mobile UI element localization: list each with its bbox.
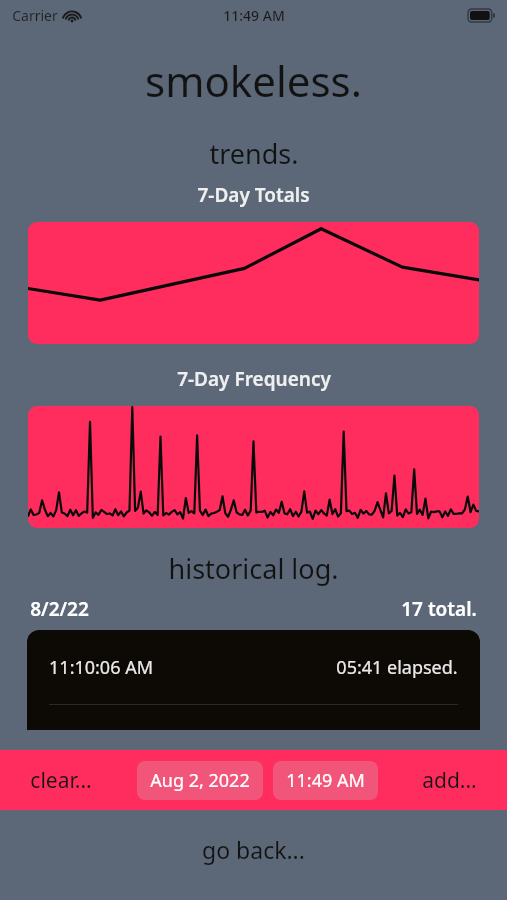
- staticText: 11:49 AM: [286, 768, 365, 793]
- staticText: historical log.: [168, 550, 339, 587]
- staticText: 11:10:06 AM: [49, 655, 153, 680]
- staticText: 05:41 elapsed.: [336, 655, 458, 680]
- staticText: smokeless.: [145, 52, 362, 109]
- button[interactable]: add...: [416, 760, 483, 801]
- button[interactable]: [28, 222, 479, 344]
- staticText: add...: [422, 766, 477, 795]
- staticText: Aug 2, 2022: [150, 768, 250, 793]
- staticText: clear...: [30, 766, 92, 795]
- staticText: 11:49 AM: [223, 6, 285, 25]
- staticText: 7-Day Frequency: [177, 366, 331, 392]
- staticText: Carrier: [12, 6, 58, 25]
- button[interactable]: [28, 406, 479, 528]
- button[interactable]: clear...: [24, 760, 98, 801]
- staticText: 7-Day Totals: [197, 182, 310, 208]
- staticText: 8/2/22: [30, 596, 89, 622]
- button[interactable]: Aug 2, 2022: [137, 761, 263, 800]
- button[interactable]: 11:49 AM: [273, 761, 378, 800]
- button[interactable]: 11:10:06 AM: [27, 630, 480, 704]
- staticText: 17 total.: [401, 596, 477, 622]
- staticText: go back...: [202, 834, 305, 865]
- button[interactable]: go back...: [190, 830, 317, 869]
- staticText: trends.: [209, 135, 299, 172]
